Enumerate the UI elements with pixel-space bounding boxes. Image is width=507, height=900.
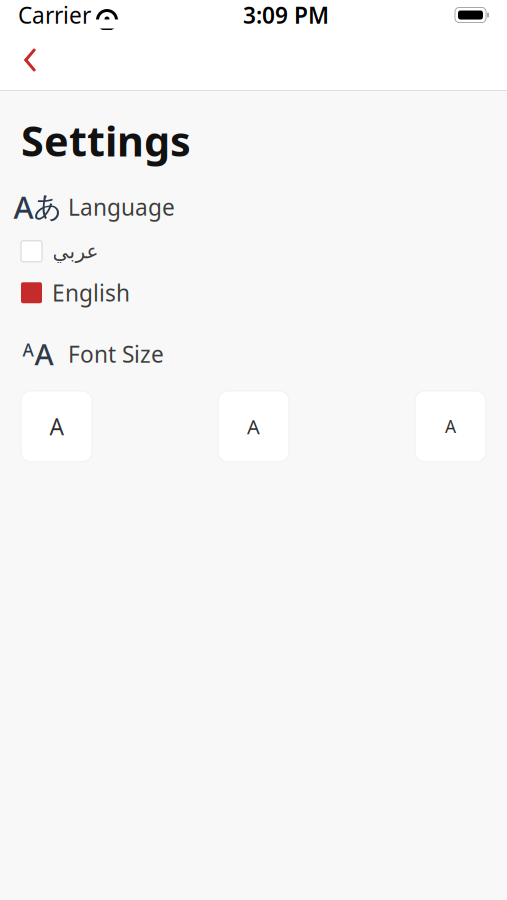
staticText: English [52,278,130,308]
button[interactable]: English [0,273,507,313]
staticText: A [13,187,33,227]
staticText: Language [68,192,175,222]
button[interactable]: Font size option [218,391,289,462]
staticText: عربي [52,240,98,263]
staticText: A [22,338,33,361]
button[interactable]: Font size option [21,391,92,462]
button[interactable]: Font size option [415,391,486,462]
staticText: Settings [21,113,191,168]
staticText: A [247,413,260,440]
staticText: 3:09 PM [243,0,329,30]
staticText: Font Size [68,339,164,369]
button[interactable]: عربي [0,235,507,268]
staticText: A [34,334,53,373]
staticText: Carrier [18,0,91,30]
staticText: あ [33,190,62,224]
button[interactable]: Back [8,38,52,82]
staticText: A [445,415,456,438]
staticText: A [49,411,63,441]
